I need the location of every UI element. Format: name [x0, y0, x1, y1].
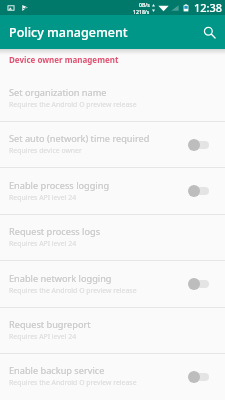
staticText: Enable backup service	[9, 364, 105, 377]
button[interactable]: Enable network logging	[0, 261, 225, 307]
staticText: Policy management	[9, 24, 128, 41]
staticText: Requires API level 24	[9, 239, 77, 248]
staticText: Request bugreport	[9, 318, 91, 331]
button[interactable]: Toggle	[188, 134, 216, 156]
button[interactable]: Set organization name	[0, 75, 225, 121]
staticText: Set organization name	[9, 86, 107, 99]
staticText: Enable process logging	[9, 179, 110, 192]
staticText: 12:38	[194, 0, 223, 15]
staticText: Enable network logging	[9, 272, 112, 285]
staticText: Requires device owner	[9, 146, 82, 155]
button[interactable]: Request bugreport	[0, 308, 225, 353]
staticText: Request process logs	[9, 225, 101, 238]
button[interactable]: Toggle	[188, 273, 216, 295]
staticText: Requires API level 24	[9, 193, 77, 202]
button[interactable]: Enable backup service	[0, 354, 225, 399]
button[interactable]: Set auto (network) time required	[0, 122, 225, 167]
staticText: Set auto (network) time required	[9, 132, 150, 145]
button[interactable]: Request process logs	[0, 215, 225, 260]
staticText: Requires the Android O preview release	[9, 286, 137, 295]
staticText: Device owner management	[9, 54, 119, 65]
staticText: 1218/s	[133, 8, 150, 15]
staticText: Requires API level 24	[9, 332, 77, 341]
staticText: 0B/s	[139, 1, 150, 8]
button[interactable]: Toggle	[188, 180, 216, 202]
staticText: Requires the Android O preview release	[9, 378, 137, 387]
staticText: Requires the Android O preview release	[9, 100, 137, 109]
button[interactable]: Search	[197, 20, 221, 44]
button[interactable]: Toggle	[188, 366, 216, 388]
button[interactable]: Enable process logging	[0, 168, 225, 214]
